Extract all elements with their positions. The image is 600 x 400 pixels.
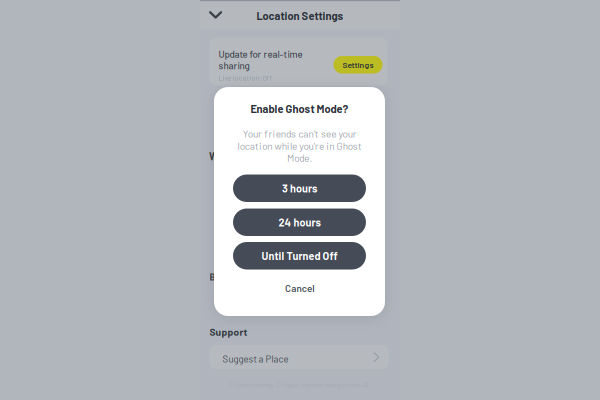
staticText: Settings bbox=[342, 60, 373, 70]
staticText: Who Can See My Location bbox=[209, 149, 330, 162]
staticText: Support bbox=[209, 325, 247, 338]
staticText: 3 hours bbox=[282, 182, 317, 195]
button[interactable]: Suggest a Place bbox=[209, 345, 388, 369]
button[interactable]: Until Turned Off bbox=[233, 242, 366, 269]
staticText: Your friends can’t see your location whi… bbox=[237, 127, 362, 164]
button[interactable]: Settings bbox=[333, 56, 382, 73]
button[interactable]: Dismiss bbox=[203, 1, 229, 29]
staticText: Bitmoji on Map bbox=[209, 271, 269, 282]
staticText: sharing bbox=[218, 59, 249, 71]
staticText: Live location: Off bbox=[218, 73, 272, 82]
button[interactable]: Cancel bbox=[214, 275, 385, 301]
staticText: Enable Ghost Mode? bbox=[250, 102, 348, 115]
staticText: Update for real-time bbox=[218, 48, 302, 60]
button[interactable]: 24 hours bbox=[233, 208, 366, 236]
staticText: Until Turned Off bbox=[261, 249, 337, 262]
staticText: Location Settings bbox=[256, 9, 343, 22]
staticText: 24 hours bbox=[278, 216, 320, 229]
staticText: Suggest a Place bbox=[222, 353, 288, 364]
button[interactable]: 3 hours bbox=[233, 174, 366, 202]
staticText: Cancel bbox=[285, 282, 314, 294]
